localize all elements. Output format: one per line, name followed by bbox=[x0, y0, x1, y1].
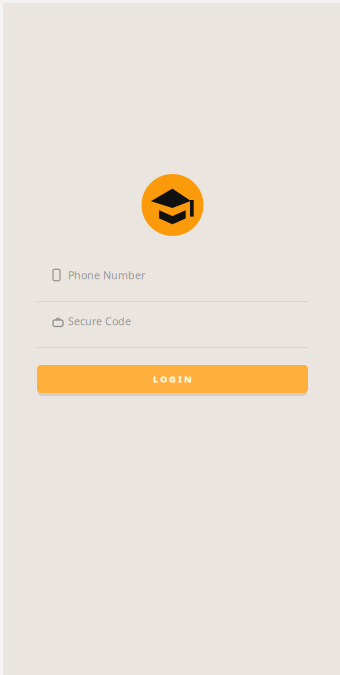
staticText: Secure Code bbox=[68, 314, 131, 328]
staticText: Phone Number bbox=[68, 268, 145, 282]
staticText: L O G I N bbox=[153, 373, 192, 385]
button[interactable]: Secure Code bbox=[37, 314, 308, 348]
button[interactable]: L O G I N bbox=[37, 365, 308, 396]
button[interactable]: Phone Number bbox=[37, 268, 308, 302]
